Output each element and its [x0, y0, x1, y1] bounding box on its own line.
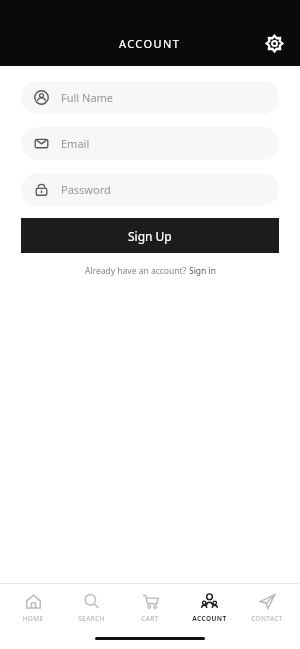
staticText: Full Name	[61, 90, 114, 105]
button[interactable]: ACCOUNT	[183, 591, 235, 625]
staticText: Password	[61, 182, 111, 197]
staticText: Email	[61, 136, 90, 151]
staticText: CART	[141, 614, 159, 623]
button[interactable]: HOME	[7, 591, 59, 625]
staticText: SEARCH	[78, 614, 105, 623]
staticText: HOME	[22, 614, 44, 623]
button[interactable]: Settings	[258, 27, 290, 59]
staticText: Sign Up	[128, 228, 172, 244]
button[interactable]: SEARCH	[65, 591, 117, 625]
staticText: ACCOUNT	[192, 614, 227, 623]
staticText: ACCOUNT	[119, 36, 181, 51]
button[interactable]: Already have an account?	[0, 265, 300, 277]
staticText: CONTACT	[251, 614, 283, 623]
button[interactable]: CONTACT	[241, 591, 293, 625]
button[interactable]: Sign Up	[21, 218, 279, 253]
staticText: Already have an account?	[85, 265, 189, 277]
button[interactable]: Full Name	[21, 81, 279, 114]
button[interactable]: Email	[21, 127, 279, 160]
button[interactable]: CART	[124, 591, 176, 625]
staticText: Sign in	[189, 265, 216, 277]
button[interactable]: Password	[21, 173, 279, 206]
